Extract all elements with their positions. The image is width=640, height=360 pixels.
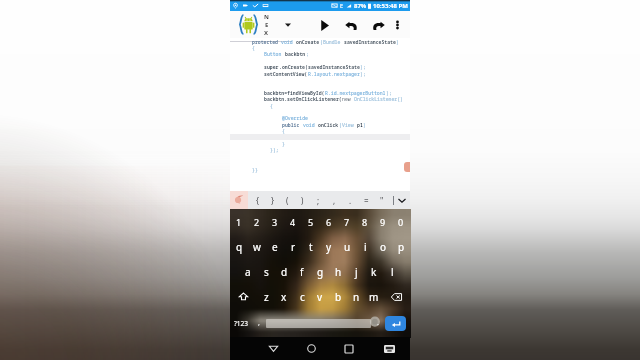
staticText: void — [281, 39, 296, 46]
button[interactable]: y — [320, 234, 338, 259]
staticText: d — [281, 265, 288, 279]
button[interactable]: b — [329, 284, 347, 309]
button[interactable]: w — [248, 234, 266, 259]
staticText: backbtn — [285, 51, 306, 58]
button[interactable]: Home — [292, 337, 330, 360]
button[interactable]: h — [329, 259, 347, 284]
staticText: R.layout.nextpager — [308, 71, 360, 78]
button[interactable]: 9 — [374, 209, 392, 234]
staticText: X — [264, 29, 269, 37]
staticText: p1 — [357, 122, 363, 129]
button[interactable]: q — [230, 234, 248, 259]
staticText: backbtn=findViewById( — [264, 90, 325, 97]
staticText: Bundle — [323, 39, 344, 46]
button[interactable]: " — [374, 191, 390, 209]
button[interactable]: Enter — [385, 316, 406, 331]
staticText: 7 — [344, 216, 350, 228]
button[interactable]: t — [302, 234, 320, 259]
staticText: } — [282, 141, 285, 148]
staticText: n — [353, 290, 360, 304]
staticText: x — [281, 290, 287, 304]
button[interactable]: } — [265, 191, 280, 209]
button[interactable]: Undo — [341, 14, 361, 36]
button[interactable]: ; — [310, 191, 326, 209]
button[interactable]: 5 — [302, 209, 320, 234]
button[interactable]: i — [356, 234, 374, 259]
button[interactable]: 2 — [248, 209, 266, 234]
button[interactable]: j — [347, 259, 365, 284]
button[interactable]: More options — [389, 14, 405, 36]
button[interactable]: Select file — [281, 17, 294, 33]
button[interactable]: ?123 — [230, 309, 252, 337]
staticText: 87% — [354, 2, 367, 10]
staticText: { — [256, 195, 260, 206]
button[interactable]: Expand toolbar — [394, 191, 409, 209]
button[interactable]: ) — [295, 191, 310, 209]
button[interactable]: 8 — [356, 209, 374, 234]
staticText: k — [371, 265, 377, 279]
staticText: { — [252, 45, 255, 52]
staticText: ; — [317, 195, 320, 206]
staticText: 0 — [398, 216, 404, 228]
button[interactable]: Switch keyboard — [368, 337, 410, 360]
staticText: 3 — [272, 216, 278, 228]
button[interactable]: k — [365, 259, 383, 284]
button[interactable]: . — [342, 191, 358, 209]
button[interactable]: z — [257, 284, 275, 309]
button[interactable]: d — [275, 259, 293, 284]
button[interactable]: = — [358, 191, 374, 209]
staticText: f — [300, 265, 304, 279]
button[interactable]: Keyboard settings — [230, 191, 248, 209]
button[interactable]: r — [284, 234, 302, 259]
button[interactable]: Redo — [368, 14, 388, 36]
staticText: super — [264, 64, 279, 71]
staticText: ?123 — [234, 319, 248, 328]
button[interactable]: 0 — [392, 209, 410, 234]
button[interactable]: 7 — [338, 209, 356, 234]
button[interactable]: , — [326, 191, 342, 209]
button[interactable]: f — [293, 259, 311, 284]
button[interactable]: l — [383, 259, 401, 284]
staticText: View — [342, 122, 357, 129]
staticText: e — [272, 240, 278, 254]
button[interactable]: Space — [266, 319, 371, 328]
button[interactable]: v — [311, 284, 329, 309]
button[interactable]: Run — [314, 14, 334, 36]
button[interactable]: c — [293, 284, 311, 309]
button[interactable]: p — [392, 234, 410, 259]
staticText: g — [317, 265, 324, 279]
button[interactable]: Recent apps — [330, 337, 368, 360]
button[interactable]: n — [347, 284, 365, 309]
staticText: savedInstanceState — [308, 64, 360, 71]
button[interactable]: Shift — [230, 284, 257, 309]
button[interactable]: g — [311, 259, 329, 284]
staticText: 8 — [362, 216, 368, 228]
button[interactable]: Back — [254, 337, 292, 360]
staticText: E — [265, 21, 269, 29]
button[interactable]: . — [371, 309, 385, 337]
button[interactable]: e — [266, 234, 284, 259]
button[interactable]: Project — [238, 14, 259, 35]
button[interactable]: x — [275, 284, 293, 309]
staticText: ) — [363, 122, 366, 129]
button[interactable]: Backspace — [383, 284, 410, 309]
button[interactable]: 4 — [284, 209, 302, 234]
button[interactable]: , — [252, 309, 266, 337]
staticText: r — [291, 240, 296, 254]
button[interactable]: { — [250, 191, 265, 209]
button[interactable]: o — [374, 234, 392, 259]
staticText: 4 — [290, 216, 296, 228]
staticText: { — [270, 103, 273, 110]
staticText: void — [303, 122, 318, 129]
staticText: l — [391, 265, 394, 279]
button[interactable]: u — [338, 234, 356, 259]
button[interactable]: s — [257, 259, 275, 284]
button[interactable]: a — [239, 259, 257, 284]
staticText: q — [236, 240, 243, 254]
button[interactable]: ( — [280, 191, 295, 209]
button[interactable]: N — [264, 13, 269, 40]
button[interactable]: 1 — [230, 209, 248, 234]
button[interactable]: m — [365, 284, 383, 309]
button[interactable]: 6 — [320, 209, 338, 234]
button[interactable]: 3 — [266, 209, 284, 234]
